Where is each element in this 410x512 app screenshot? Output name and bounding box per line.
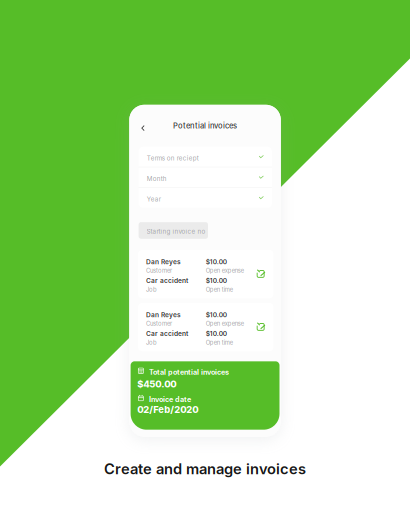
button[interactable]: Year — [139, 188, 272, 208]
staticText: Create and manage invoices — [104, 460, 306, 478]
staticText: Customer — [146, 267, 172, 274]
staticText: Terms on reciept — [147, 154, 199, 162]
staticText: Potential invoices — [173, 121, 237, 130]
button[interactable]: Month — [139, 167, 272, 187]
staticText: $10.00 — [206, 311, 227, 319]
staticText: Open time — [206, 286, 233, 293]
button[interactable]: Starting invoice no — [139, 222, 208, 239]
button[interactable]: Back — [136, 120, 150, 136]
staticText: Dan Reyes — [146, 258, 181, 266]
staticText: Job — [146, 339, 157, 346]
staticText: Month — [147, 175, 167, 182]
staticText: Open expense — [206, 267, 244, 274]
staticText: Open expense — [206, 320, 244, 327]
button[interactable]: Dan Reyes — [138, 303, 273, 351]
staticText: 02/Feb/2020 — [137, 404, 198, 415]
staticText: $10.00 — [206, 258, 227, 266]
staticText: Total potential invoices — [149, 368, 229, 376]
staticText: Car accident — [146, 277, 188, 285]
staticText: Starting invoice no — [147, 228, 206, 235]
button[interactable]: Terms on reciept — [139, 147, 272, 167]
button[interactable]: Dan Reyes — [138, 250, 273, 298]
staticText: Invoice date — [149, 395, 191, 404]
staticText: Year — [147, 195, 161, 203]
staticText: Job — [146, 286, 157, 293]
staticText: Car accident — [146, 330, 188, 338]
staticText: $450.00 — [137, 378, 176, 390]
staticText: $10.00 — [206, 277, 227, 285]
staticText: Open time — [206, 339, 233, 346]
staticText: $10.00 — [206, 330, 227, 338]
staticText: Customer — [146, 320, 172, 327]
staticText: Dan Reyes — [146, 311, 181, 319]
